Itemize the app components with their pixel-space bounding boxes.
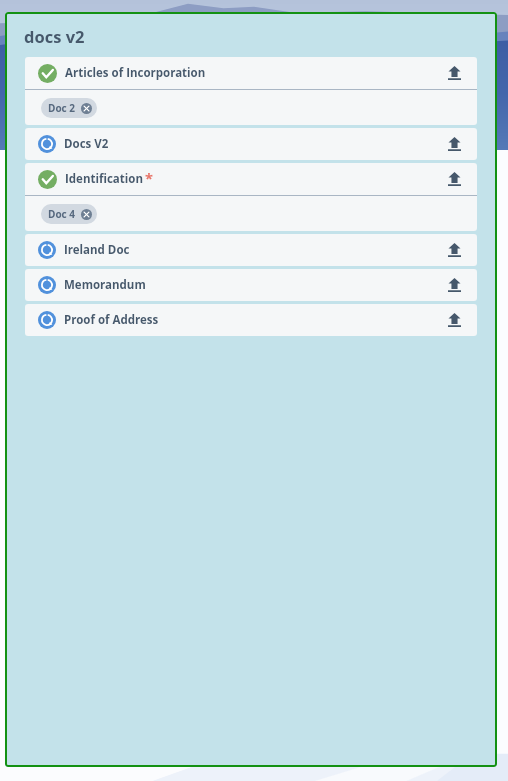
staticText: Identification: [65, 171, 143, 187]
button[interactable]: Doc 2: [41, 98, 97, 118]
staticText: docs v2: [24, 25, 85, 47]
staticText: Doc 4: [48, 207, 76, 221]
button[interactable]: Docs V2: [25, 128, 477, 160]
staticText: Memorandum: [64, 277, 146, 293]
button[interactable]: Upload: [438, 269, 470, 301]
button[interactable]: Identification: [25, 163, 477, 195]
staticText: *: [145, 169, 153, 189]
staticText: Ireland Doc: [64, 242, 130, 258]
button[interactable]: Articles of Incorporation: [25, 57, 477, 89]
button[interactable]: Ireland Doc: [25, 234, 477, 266]
button[interactable]: Upload: [438, 128, 470, 160]
button[interactable]: Memorandum: [25, 269, 477, 301]
button[interactable]: Upload: [438, 304, 470, 336]
button[interactable]: Proof of Address: [25, 304, 477, 336]
staticText: Articles of Incorporation: [65, 65, 206, 81]
staticText: Docs V2: [64, 136, 109, 152]
staticText: Proof of Address: [64, 312, 159, 328]
button[interactable]: Upload: [438, 163, 470, 195]
staticText: Doc 2: [48, 101, 76, 115]
button[interactable]: Upload: [438, 57, 470, 89]
button[interactable]: Upload: [438, 234, 470, 266]
button[interactable]: Doc 4: [41, 204, 97, 224]
